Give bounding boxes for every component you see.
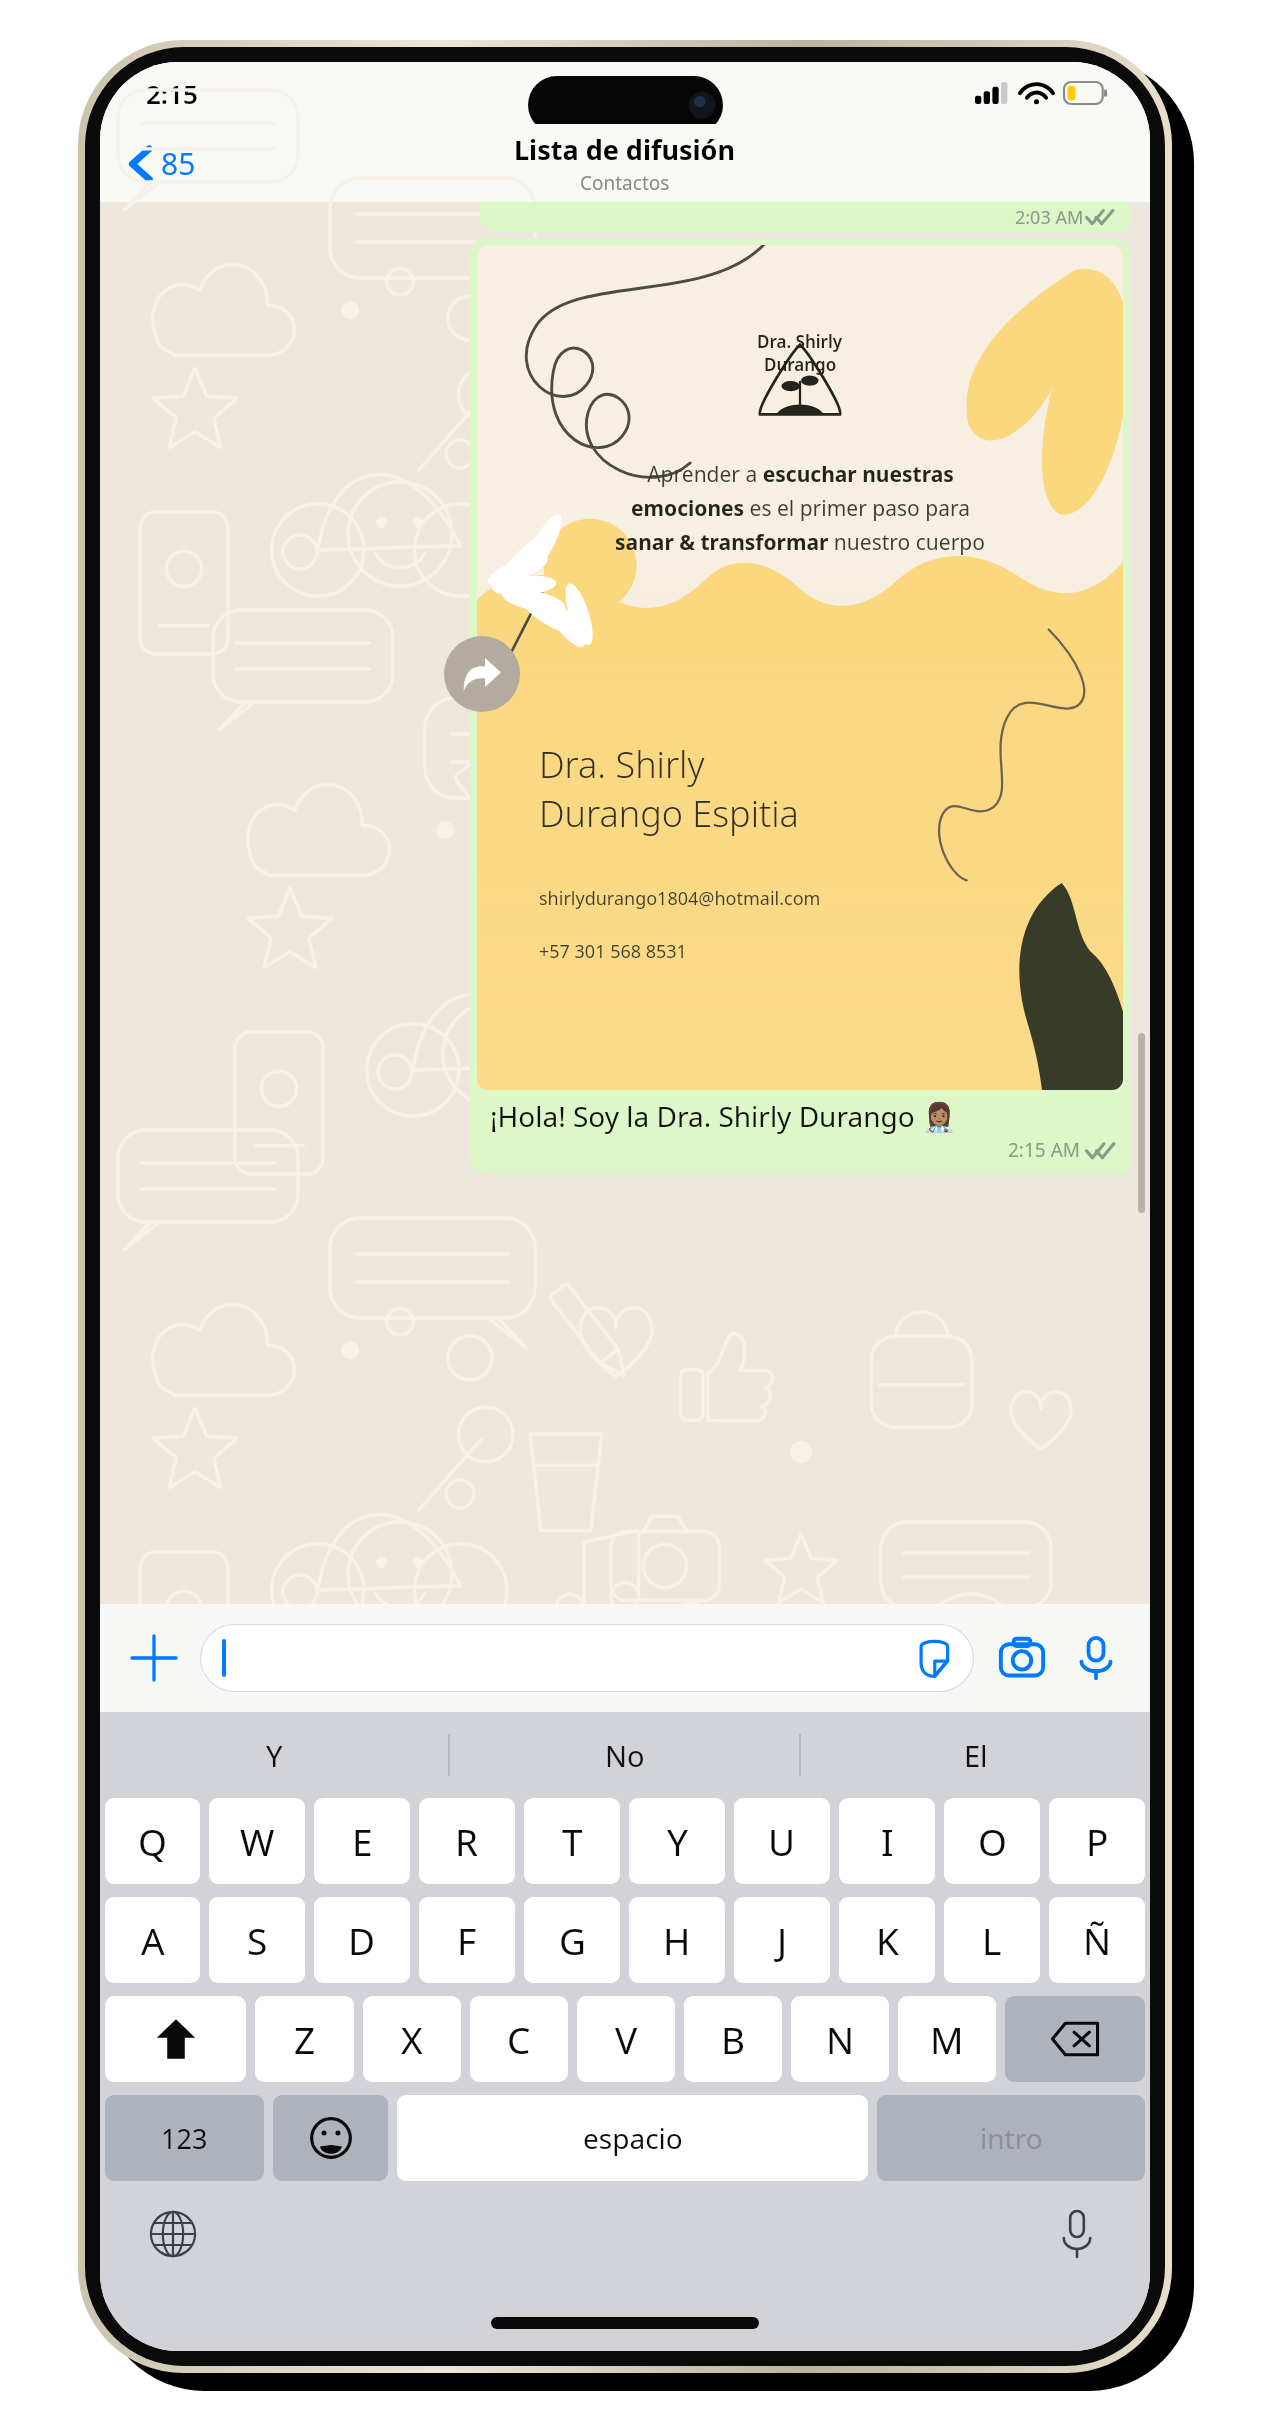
staticText: Durango Espitia [539,789,799,838]
staticText: Dra. Shirly [539,740,705,789]
button[interactable]: S [209,1897,305,1983]
staticText: Ñ [1083,1915,1112,1965]
staticText: Lista de difusión [514,131,736,168]
button[interactable]: Reenviar [444,636,520,712]
staticText: Z [294,2014,316,2064]
staticText: O [978,1816,1007,1866]
staticText: D [348,1915,376,1965]
button[interactable]: L [944,1897,1040,1983]
staticText: C [507,2014,531,2064]
staticText: P [1086,1816,1109,1866]
button[interactable]: Stickers [200,1624,974,1692]
staticText: K [876,1915,899,1965]
button[interactable]: J [734,1897,830,1983]
button[interactable]: R [419,1798,515,1884]
button[interactable]: espacio [397,2095,868,2181]
button[interactable]: K [839,1897,935,1983]
staticText: U [768,1816,796,1866]
button[interactable]: Cámara [990,1626,1054,1690]
button[interactable]: H [629,1897,725,1983]
staticText: V [615,2014,638,2064]
staticText: shirlydurango1804@hotmail.com [539,886,821,911]
button[interactable]: U [734,1798,830,1884]
staticText: 2:15 [146,76,198,111]
button[interactable]: Adjuntar [122,1626,186,1690]
button[interactable]: El [801,1712,1150,1798]
button[interactable]: Mayúsculas [105,1996,246,2082]
staticText: 2:03 AM [1015,205,1084,230]
staticText: sanar & transformar nuestro cuerpo [615,528,985,557]
button[interactable]: M [898,1996,996,2082]
button[interactable]: Borrar [1005,1996,1145,2082]
staticText: Dra. Shirly [757,330,843,353]
button[interactable]: Z [255,1996,354,2082]
button[interactable]: No [450,1712,799,1798]
button[interactable]: Cambiar idioma [138,2199,208,2269]
staticText: Contactos [580,170,670,196]
button[interactable]: N [791,1996,889,2082]
staticText: S [247,1915,268,1965]
staticText: No [605,1736,645,1775]
button[interactable]: G [524,1897,620,1983]
button[interactable]: P [1049,1798,1145,1884]
staticText: L [982,1915,1002,1965]
staticText: espacio [583,2119,683,2157]
staticText: Aprender a escuchar nuestras [647,460,954,489]
button[interactable]: I [839,1798,935,1884]
button[interactable]: Stickers [908,1632,960,1684]
staticText: H [663,1915,691,1965]
staticText: Durango [764,353,837,376]
staticText: B [721,2014,746,2064]
button[interactable]: intro [877,2095,1145,2181]
staticText: N [826,2014,855,2064]
staticText: Q [138,1816,167,1866]
button[interactable]: C [470,1996,568,2082]
button[interactable]: E [314,1798,410,1884]
staticText: Y [266,1736,283,1775]
staticText: El [964,1736,988,1775]
button[interactable]: X [363,1996,461,2082]
staticText: 2:15 AM [1008,1137,1081,1163]
button[interactable]: 85 [122,137,204,190]
button[interactable]: Dictado [1042,2199,1112,2269]
button[interactable]: 123 [105,2095,264,2181]
button[interactable]: D [314,1897,410,1983]
staticText: intro [980,2119,1043,2157]
button[interactable]: O [944,1798,1040,1884]
button[interactable]: T [524,1798,620,1884]
staticText: M [930,2014,964,2064]
staticText: R [455,1816,479,1866]
button[interactable]: Dra. Shirly [477,245,1123,1167]
staticText: E [352,1816,373,1866]
button[interactable]: Y [100,1712,448,1798]
staticText: X [401,2014,423,2064]
staticText: 123 [161,2120,208,2157]
staticText: W [240,1816,275,1866]
button[interactable]: 2:03 AM [480,202,1130,232]
staticText: G [559,1915,586,1965]
staticText: 85 [161,143,196,184]
staticText: I [881,1816,894,1866]
button[interactable]: Emoji [273,2095,388,2181]
button[interactable]: V [577,1996,675,2082]
staticText: J [777,1915,788,1965]
button[interactable]: Lista de difusión [514,131,736,196]
button[interactable]: B [684,1996,782,2082]
button[interactable]: W [209,1798,305,1884]
staticText: A [141,1915,165,1965]
staticText: F [457,1915,477,1965]
button[interactable]: Q [105,1798,200,1884]
button[interactable]: Y [629,1798,725,1884]
button[interactable]: Mensaje de voz [1064,1626,1128,1690]
staticText: emociones es el primer paso para [631,494,970,523]
staticText: ¡Hola! Soy la Dra. Shirly Durango 👩🏽‍⚕️ [490,1097,957,1135]
staticText: Y [667,1816,688,1866]
button[interactable]: F [419,1897,515,1983]
button[interactable]: A [105,1897,200,1983]
staticText: +57 301 568 8531 [539,939,687,964]
staticText: T [562,1816,583,1866]
button[interactable]: Ñ [1049,1897,1145,1983]
